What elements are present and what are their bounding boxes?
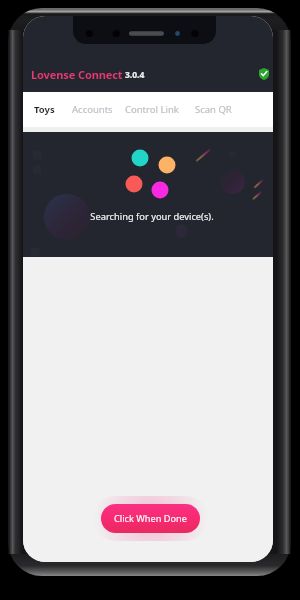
staticText: Accounts [72,103,113,116]
button[interactable]: Secure connection [257,67,271,81]
button[interactable]: Scan QR [195,103,232,116]
button[interactable]: Click When Done [101,504,200,533]
staticText: Searching for your device(s). [27,210,273,223]
staticText: Click When Done [114,512,187,525]
button[interactable]: Control Link [125,103,179,116]
staticText: 3.0.4 [125,69,145,81]
staticText: Toys [34,103,55,116]
staticText: Scan QR [195,103,232,116]
staticText: Lovense Connect [31,67,123,82]
staticText: Control Link [125,103,179,116]
button[interactable]: Accounts [72,103,113,116]
button[interactable]: Toys [34,103,55,116]
